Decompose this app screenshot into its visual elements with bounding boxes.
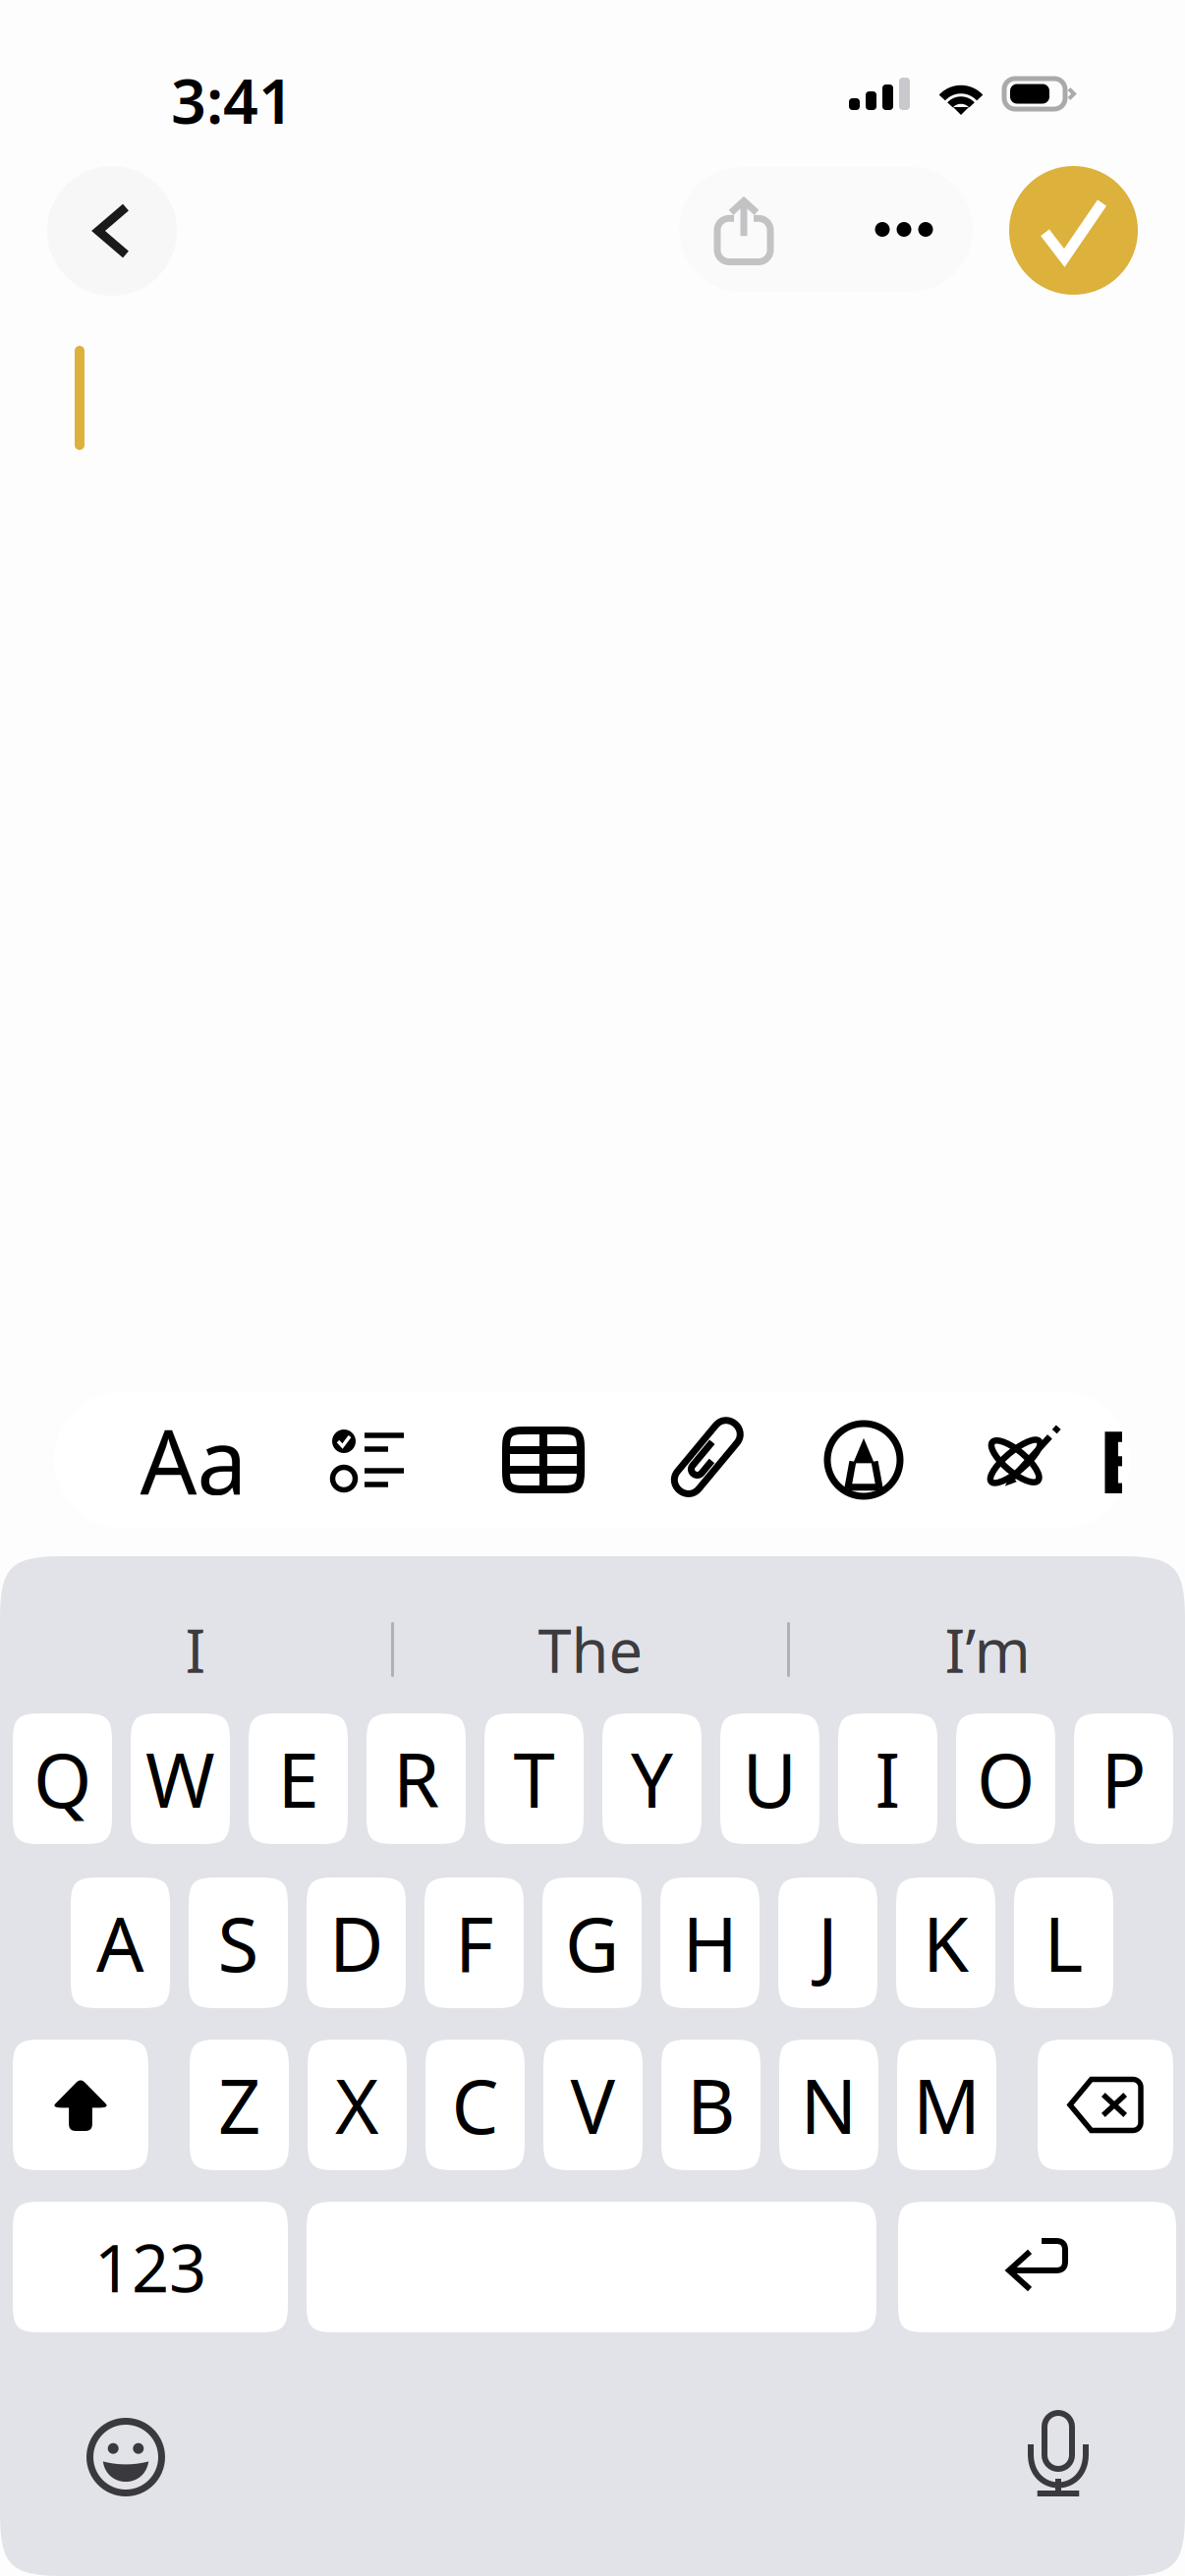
button[interactable]: Shift xyxy=(13,2040,148,2170)
button[interactable]: Writing tools xyxy=(966,1392,1074,1528)
staticText: X xyxy=(335,2055,379,2154)
button[interactable]: X xyxy=(308,2040,407,2170)
staticText: C xyxy=(451,2055,499,2154)
button[interactable]: 123 xyxy=(13,2202,288,2332)
staticText: J xyxy=(818,1893,838,1992)
button[interactable]: B xyxy=(661,2040,761,2170)
button[interactable]: K xyxy=(896,1877,995,2008)
staticText: Z xyxy=(218,2055,260,2154)
staticText: E xyxy=(278,1729,319,1828)
button[interactable]: M xyxy=(897,2040,996,2170)
button[interactable]: R xyxy=(367,1713,466,1844)
button[interactable]: P xyxy=(1074,1713,1173,1844)
staticText: Y xyxy=(631,1729,673,1828)
staticText: K xyxy=(923,1893,969,1992)
button[interactable]: Emoji xyxy=(86,2418,165,2496)
button[interactable]: Q xyxy=(13,1713,112,1844)
button[interactable]: Z xyxy=(190,2040,289,2170)
button[interactable]: W xyxy=(131,1713,230,1844)
button[interactable]: U xyxy=(720,1713,819,1844)
staticText: B xyxy=(687,2055,735,2154)
button[interactable]: I xyxy=(0,1600,391,1699)
staticText: A xyxy=(96,1893,144,1992)
staticText: U xyxy=(742,1729,797,1828)
button[interactable]: Markup xyxy=(810,1392,918,1528)
button[interactable]: I xyxy=(838,1713,937,1844)
staticText: D xyxy=(329,1893,383,1992)
button[interactable]: Bold xyxy=(1098,1392,1122,1528)
staticText: I xyxy=(185,1610,206,1690)
staticText: O xyxy=(977,1729,1035,1828)
button[interactable]: Y xyxy=(602,1713,702,1844)
button[interactable]: V xyxy=(543,2040,643,2170)
button[interactable]: H xyxy=(660,1877,760,2008)
staticText: N xyxy=(800,2055,857,2154)
staticText: I xyxy=(875,1729,901,1828)
staticText: S xyxy=(218,1893,259,1992)
button[interactable]: Delete xyxy=(1038,2040,1173,2170)
staticText: T xyxy=(513,1729,555,1828)
button[interactable]: Table xyxy=(489,1392,597,1528)
button[interactable]: Dictate xyxy=(1031,2413,1086,2495)
button[interactable]: The xyxy=(394,1600,787,1699)
button[interactable]: N xyxy=(779,2040,878,2170)
button[interactable]: Back xyxy=(47,166,177,296)
button[interactable]: O xyxy=(956,1713,1055,1844)
button[interactable]: T xyxy=(484,1713,584,1844)
staticText: M xyxy=(913,2055,981,2154)
button[interactable]: A xyxy=(71,1877,170,2008)
staticText: H xyxy=(682,1893,737,1992)
staticText: Q xyxy=(33,1729,91,1828)
staticText: F xyxy=(455,1893,493,1992)
button[interactable]: Attach file xyxy=(654,1392,762,1528)
button[interactable]: S xyxy=(189,1877,288,2008)
staticText: V xyxy=(570,2055,616,2154)
button[interactable]: D xyxy=(307,1877,406,2008)
button[interactable]: Return xyxy=(898,2202,1176,2332)
button[interactable]: L xyxy=(1014,1877,1113,2008)
staticText: The xyxy=(538,1610,643,1690)
staticText: R xyxy=(393,1729,439,1828)
button[interactable]: J xyxy=(778,1877,877,2008)
staticText: 3:41 xyxy=(171,59,294,141)
button[interactable]: G xyxy=(542,1877,642,2008)
staticText: P xyxy=(1101,1729,1146,1828)
staticText: G xyxy=(565,1893,619,1992)
button[interactable]: Checklist xyxy=(314,1392,423,1528)
button[interactable]: C xyxy=(425,2040,525,2170)
staticText: 123 xyxy=(94,2223,206,2310)
button[interactable]: E xyxy=(249,1713,348,1844)
staticText: W xyxy=(145,1729,215,1828)
staticText: L xyxy=(1044,1893,1083,1992)
button[interactable]: F xyxy=(424,1877,524,2008)
button[interactable]: Aa xyxy=(140,1392,248,1528)
button[interactable]: I’m xyxy=(790,1600,1185,1699)
staticText: I’m xyxy=(945,1610,1030,1690)
button[interactable]: Done xyxy=(1009,166,1138,295)
staticText: B xyxy=(1098,1403,1156,1517)
button[interactable]: More options xyxy=(850,167,958,292)
staticText: Aa xyxy=(140,1401,247,1519)
button[interactable]: Share xyxy=(685,167,803,292)
